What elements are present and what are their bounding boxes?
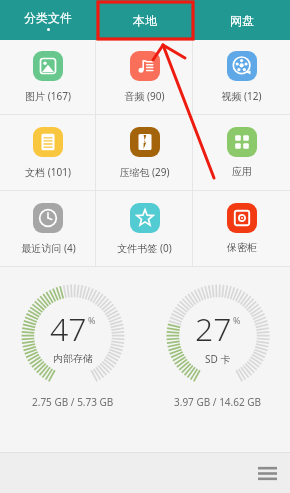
staticText: 本地	[133, 13, 157, 28]
button[interactable]: 网盘	[193, 0, 290, 40]
staticText: 视频 (12)	[221, 89, 262, 103]
button[interactable]: 应用	[193, 115, 290, 190]
staticText: 图片 (167)	[25, 89, 71, 103]
staticText: %	[88, 314, 96, 326]
staticText: %	[233, 314, 241, 326]
button[interactable]: 分类文件	[0, 0, 96, 40]
staticText: 27	[195, 307, 232, 351]
staticText: 保密柜	[227, 241, 257, 254]
staticText: 最近访问 (4)	[21, 241, 76, 255]
staticText: 3.97 GB / 14.62 GB	[174, 395, 262, 409]
button[interactable]: 文件书签 (0)	[96, 191, 193, 266]
staticText: 音频 (90)	[124, 89, 165, 103]
button[interactable]: 本地	[96, 0, 193, 40]
button[interactable]: 视频 (12)	[193, 40, 290, 114]
staticText: 网盘	[230, 13, 254, 28]
staticText: SD 卡	[205, 352, 231, 366]
button[interactable]: Menu	[252, 458, 282, 488]
button[interactable]: 47	[0, 283, 145, 425]
button[interactable]: 压缩包 (29)	[96, 115, 193, 190]
staticText: 内部存储	[53, 352, 93, 365]
staticText: 文件书签 (0)	[117, 241, 172, 255]
button[interactable]: 最近访问 (4)	[0, 191, 96, 266]
button[interactable]: 图片 (167)	[0, 40, 96, 114]
button[interactable]: 保密柜	[193, 191, 290, 266]
button[interactable]: 27	[145, 283, 290, 425]
staticText: 2.75 GB / 5.73 GB	[32, 395, 114, 409]
staticText: 压缩包 (29)	[119, 165, 170, 179]
button[interactable]: 文档 (101)	[0, 115, 96, 190]
staticText: 分类文件	[24, 10, 72, 25]
staticText: 47	[50, 307, 87, 351]
staticText: 文档 (101)	[25, 165, 71, 179]
staticText: 应用	[232, 165, 252, 178]
button[interactable]: 音频 (90)	[96, 40, 193, 114]
